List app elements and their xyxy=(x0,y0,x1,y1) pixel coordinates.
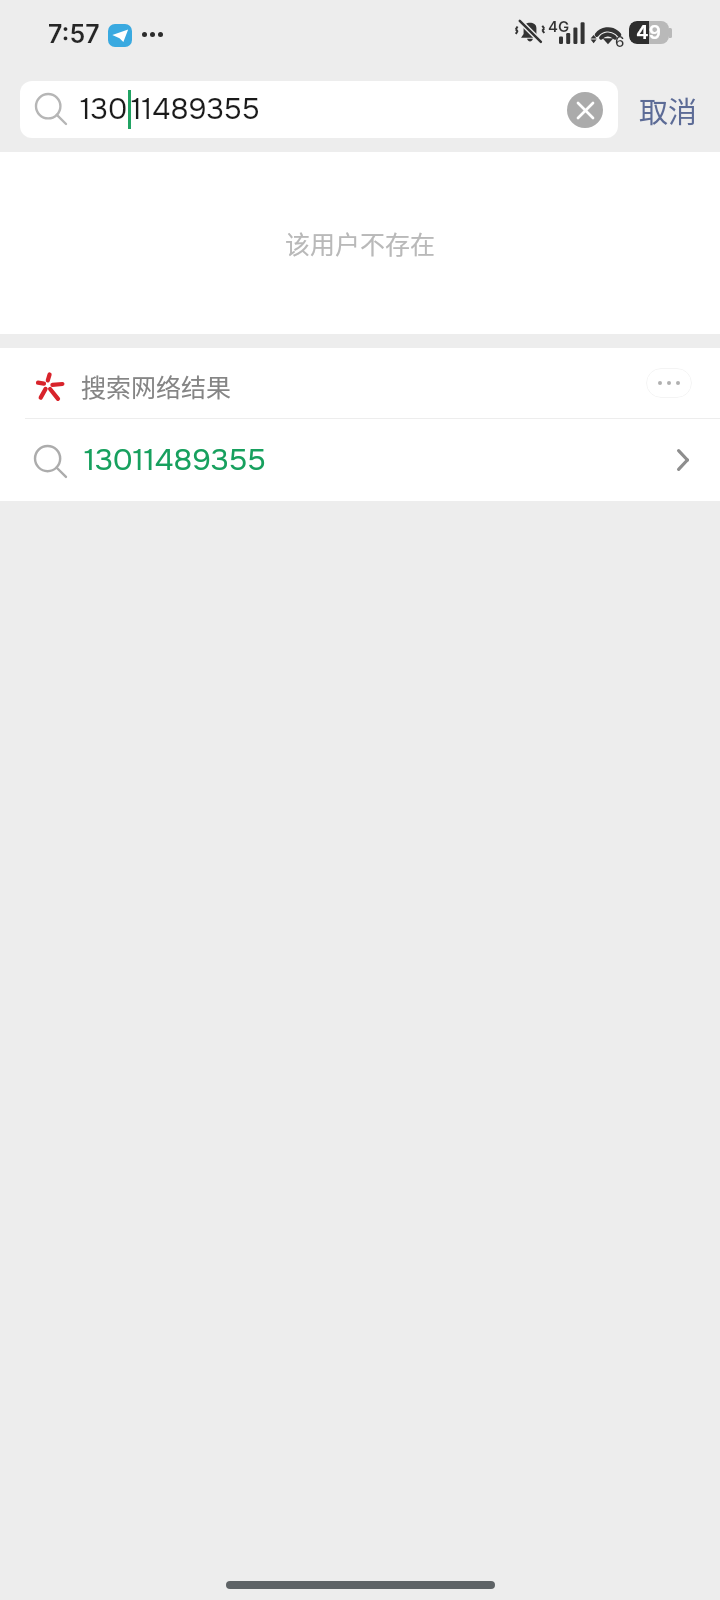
staticText: 取消 xyxy=(639,89,698,131)
staticText: 11489355 xyxy=(131,91,260,128)
staticText: 49 xyxy=(636,21,661,44)
staticText: 6 xyxy=(615,32,625,50)
button[interactable]: 13011489355 xyxy=(0,419,720,501)
staticText: 该用户不存在 xyxy=(285,225,436,261)
staticText: 4G xyxy=(548,17,570,35)
other: Wi-Fi 6 xyxy=(591,20,625,46)
staticText: 130 xyxy=(80,91,128,128)
staticText: 13011489355 xyxy=(84,441,266,479)
staticText: 7:57 xyxy=(48,19,100,49)
button[interactable]: More options xyxy=(646,368,692,398)
staticText: 搜索网络结果 xyxy=(81,368,232,404)
button[interactable]: 取消 xyxy=(639,89,698,131)
button[interactable]: Clear text xyxy=(567,92,603,128)
other: Silent mode xyxy=(514,18,546,44)
button[interactable]: 130 xyxy=(20,81,618,138)
button[interactable]: 搜索网络结果 xyxy=(0,348,720,418)
